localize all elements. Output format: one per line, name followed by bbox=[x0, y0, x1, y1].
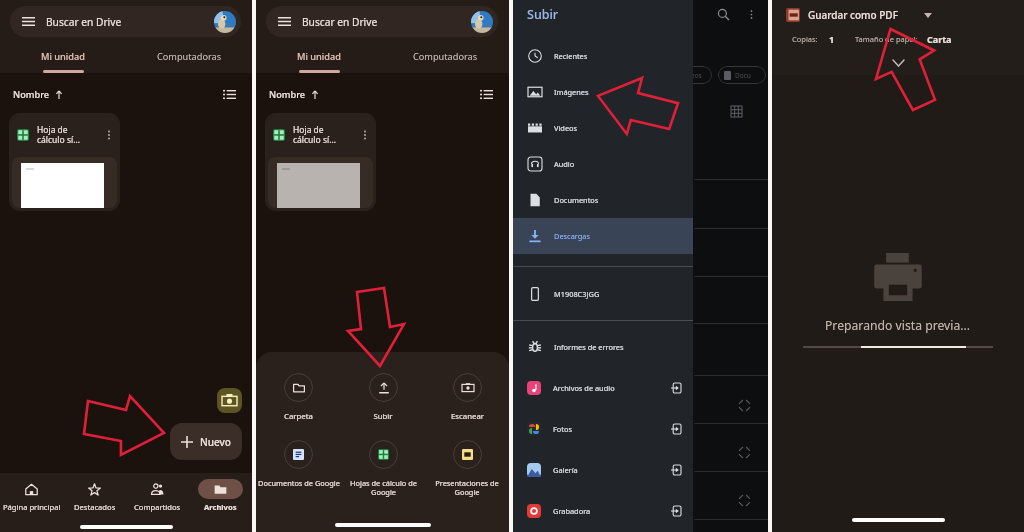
staticText: Buscar en Drive bbox=[302, 15, 378, 29]
button[interactable]: M1908C3JGG bbox=[513, 267, 693, 320]
staticText: Audio bbox=[554, 159, 575, 169]
staticText: Subir bbox=[527, 6, 559, 23]
other: Account bbox=[471, 11, 493, 33]
other: Menu bbox=[22, 17, 35, 26]
other: Account bbox=[214, 11, 236, 33]
button[interactable]: Mi unidad bbox=[0, 43, 126, 70]
button[interactable]: Galería bbox=[513, 449, 693, 490]
staticText: Destacados bbox=[74, 502, 116, 512]
button[interactable]: Grabadora bbox=[513, 490, 693, 531]
staticText: Nuevo bbox=[200, 435, 231, 449]
other: Menu bbox=[278, 17, 291, 26]
staticText: Subir bbox=[373, 411, 393, 422]
button[interactable]: Carpeta bbox=[256, 373, 341, 422]
button[interactable]: Nuevo bbox=[170, 423, 242, 460]
button[interactable]: Docu bbox=[718, 66, 766, 84]
staticText: Tamaño de papel: bbox=[855, 34, 918, 44]
button[interactable]: Expand options bbox=[886, 51, 910, 75]
button[interactable]: List view bbox=[476, 84, 496, 104]
staticText: Documentos bbox=[554, 195, 599, 205]
staticText: Archivos bbox=[204, 502, 237, 512]
staticText: Guardar como PDF bbox=[808, 8, 898, 22]
button[interactable]: Informes de errores bbox=[513, 326, 693, 367]
staticText: Fotos bbox=[553, 424, 572, 434]
button[interactable]: Computadoras bbox=[126, 43, 252, 70]
button[interactable]: Hoja de cálculo sí... bbox=[9, 113, 120, 211]
staticText: Computadoras bbox=[413, 50, 478, 63]
staticText: Imágenes bbox=[554, 87, 589, 97]
staticText: Mi unidad bbox=[297, 50, 341, 63]
staticText: Archivos de audio bbox=[553, 383, 615, 393]
staticText: 1 bbox=[829, 33, 835, 45]
staticText: Buscar en Drive bbox=[46, 15, 122, 29]
staticText: Nombre bbox=[13, 88, 50, 101]
button[interactable]: Menu bbox=[266, 6, 498, 37]
staticText: Preparando vista previa... bbox=[825, 317, 971, 334]
button[interactable]: Scan with camera bbox=[217, 388, 242, 413]
button[interactable]: Documentos de Google bbox=[256, 440, 341, 488]
button[interactable]: Nombre bbox=[269, 88, 319, 101]
button[interactable]: List view bbox=[219, 84, 239, 104]
button[interactable]: Grid view bbox=[731, 106, 742, 117]
button[interactable]: Página principal bbox=[0, 473, 63, 517]
button[interactable]: Videos bbox=[513, 110, 693, 146]
staticText: Hoja de cálculo sí... bbox=[37, 124, 81, 146]
button[interactable]: More options bbox=[102, 128, 116, 142]
staticText: Hojas de cálculo de Google bbox=[350, 478, 417, 497]
staticText: Mi unidad bbox=[41, 50, 85, 63]
button[interactable]: Archivos de audio bbox=[513, 367, 693, 408]
staticText: M1908C3JGG bbox=[554, 289, 600, 299]
button[interactable]: Subir bbox=[341, 373, 425, 422]
staticText: Carta bbox=[927, 33, 952, 45]
staticText: Carpeta bbox=[284, 411, 313, 422]
button[interactable]: Escanear bbox=[425, 373, 509, 422]
staticText: deos bbox=[687, 71, 702, 80]
staticText: Computadoras bbox=[157, 50, 222, 63]
staticText: Escanear bbox=[451, 411, 484, 422]
staticText: Recientes bbox=[554, 51, 588, 61]
staticText: Grabadora bbox=[553, 506, 591, 516]
staticText: Informes de errores bbox=[554, 342, 624, 352]
button[interactable]: More options bbox=[742, 5, 760, 23]
button[interactable]: Open app bbox=[671, 424, 681, 434]
button[interactable]: Open app bbox=[671, 465, 681, 475]
button[interactable]: Computadoras bbox=[382, 43, 509, 70]
button[interactable]: Compartidos bbox=[126, 473, 189, 517]
staticText: Videos bbox=[554, 123, 578, 133]
button[interactable]: Search bbox=[714, 5, 732, 23]
staticText: Copias: bbox=[792, 34, 818, 44]
button[interactable]: Mi unidad bbox=[256, 43, 382, 70]
button[interactable]: Presentaciones de Google bbox=[425, 440, 509, 497]
staticText: Docu bbox=[735, 71, 751, 80]
staticText: Nombre bbox=[269, 88, 306, 101]
button[interactable]: Documentos bbox=[513, 182, 693, 218]
button[interactable]: Descargas bbox=[513, 218, 693, 254]
staticText: Descargas bbox=[554, 231, 591, 241]
button[interactable]: More options bbox=[358, 128, 372, 142]
button[interactable]: Hojas de cálculo de Google bbox=[341, 440, 425, 497]
button[interactable]: deos bbox=[676, 66, 712, 84]
staticText: Hoja de cálculo sí... bbox=[293, 124, 337, 146]
staticText: Galería bbox=[553, 465, 578, 475]
button[interactable]: Nombre bbox=[13, 88, 63, 101]
staticText: Presentaciones de Google bbox=[435, 478, 499, 497]
staticText: Documentos de Google bbox=[258, 478, 340, 488]
button[interactable]: Imágenes bbox=[513, 74, 693, 110]
button[interactable]: Destacados bbox=[63, 473, 126, 517]
staticText: Compartidos bbox=[134, 502, 181, 512]
button[interactable]: Archivos bbox=[189, 473, 252, 517]
button[interactable]: Menu bbox=[10, 6, 241, 37]
button[interactable]: Fotos bbox=[513, 408, 693, 449]
button[interactable]: Hoja de cálculo sí... bbox=[265, 113, 376, 211]
button[interactable]: Guardar como PDF bbox=[786, 8, 1024, 22]
button[interactable]: Open app bbox=[671, 506, 681, 516]
button[interactable]: Recientes bbox=[513, 38, 693, 74]
button[interactable]: Audio bbox=[513, 146, 693, 182]
button[interactable]: Open app bbox=[671, 383, 681, 393]
staticText: Página principal bbox=[3, 502, 61, 512]
